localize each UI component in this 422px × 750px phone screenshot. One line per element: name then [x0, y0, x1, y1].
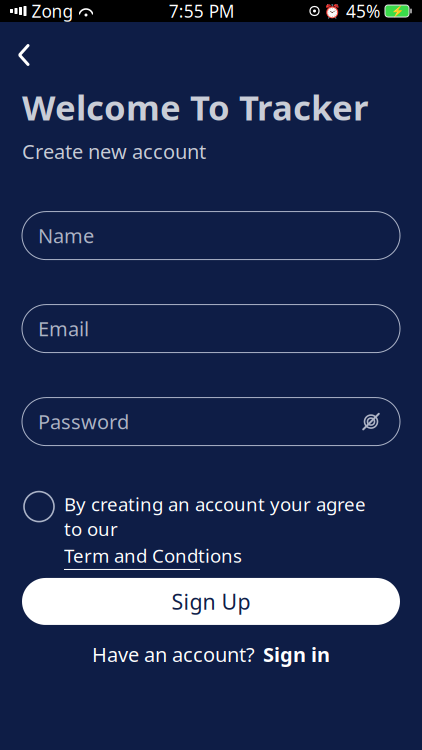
button[interactable]: Term and Condtions: [64, 543, 242, 570]
staticText: Create new account: [22, 138, 206, 165]
staticText: Password: [38, 408, 129, 435]
staticText: Sign Up: [171, 587, 250, 616]
staticText: ⏰: [324, 3, 341, 19]
staticText: ⚡: [390, 5, 403, 17]
staticText: Sign in: [263, 641, 330, 668]
button[interactable]: Sign Up: [22, 578, 400, 625]
staticText: Term and Condtions: [64, 543, 242, 568]
button[interactable]: Show password: [356, 407, 386, 437]
button[interactable]: Agree to terms: [24, 492, 54, 522]
staticText: 7:55 PM: [169, 0, 235, 22]
staticText: Email: [38, 315, 89, 342]
button[interactable]: Back: [2, 38, 46, 72]
staticText: 45%: [346, 0, 380, 22]
button[interactable]: Sign in: [263, 641, 330, 668]
staticText: By creating an account your agree to our: [64, 492, 366, 541]
staticText: Welcome To Tracker: [22, 84, 368, 130]
staticText: Have an account?: [92, 641, 255, 668]
staticText: Name: [38, 222, 94, 249]
staticText: Zong: [31, 0, 73, 22]
